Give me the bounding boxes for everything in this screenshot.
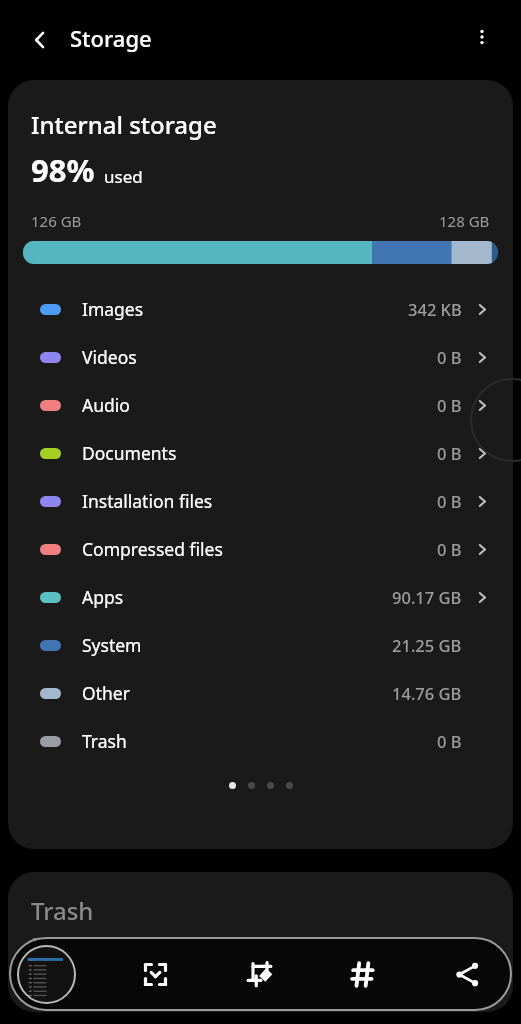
staticText: used bbox=[104, 165, 143, 188]
staticText: System bbox=[82, 633, 142, 657]
staticText: Apps bbox=[82, 585, 124, 609]
button[interactable]: Audio bbox=[8, 381, 513, 429]
staticText: Documents bbox=[82, 441, 177, 465]
button[interactable]: Crop bbox=[233, 948, 285, 1000]
button[interactable]: Videos bbox=[8, 333, 513, 381]
button[interactable]: Installation files bbox=[8, 477, 513, 525]
button[interactable]: Other bbox=[8, 669, 513, 717]
staticText: 0 B bbox=[437, 490, 462, 512]
staticText: 98% bbox=[31, 149, 95, 191]
button[interactable]: Capture more bbox=[129, 948, 181, 1000]
staticText: Internal storage bbox=[31, 108, 217, 141]
button[interactable]: More options bbox=[460, 15, 504, 59]
staticText: 21.25 GB bbox=[392, 634, 462, 656]
staticText: Storage bbox=[70, 23, 152, 53]
button[interactable]: Documents bbox=[8, 429, 513, 477]
staticText: 0 B bbox=[437, 538, 462, 560]
staticText: 0 B bbox=[437, 346, 462, 368]
button[interactable]: Add tag bbox=[337, 948, 389, 1000]
staticText: Other bbox=[82, 681, 130, 705]
staticText: 0 B bbox=[31, 932, 54, 952]
button[interactable]: Compressed files bbox=[8, 525, 513, 573]
staticText: Videos bbox=[82, 345, 137, 369]
staticText: 90.17 GB bbox=[392, 586, 462, 608]
staticText: Images bbox=[82, 297, 144, 321]
staticText: 342 KB bbox=[408, 298, 462, 320]
staticText: 126 GB bbox=[31, 211, 82, 231]
button[interactable]: Back bbox=[18, 18, 62, 62]
button[interactable]: System bbox=[8, 621, 513, 669]
staticText: 0 B bbox=[437, 442, 462, 464]
staticText: 0 B bbox=[437, 394, 462, 416]
staticText: Trash bbox=[31, 894, 94, 927]
button[interactable]: Share bbox=[441, 948, 493, 1000]
button[interactable]: Images bbox=[8, 285, 513, 333]
button[interactable]: Trash bbox=[8, 717, 513, 765]
staticText: 128 GB bbox=[439, 211, 490, 231]
staticText: Installation files bbox=[82, 489, 213, 513]
button[interactable]: Trash bbox=[8, 872, 513, 1012]
staticText: Audio bbox=[82, 393, 130, 417]
staticText: 14.76 GB bbox=[392, 682, 462, 704]
button[interactable]: Screenshot preview bbox=[17, 945, 76, 1004]
staticText: Trash bbox=[82, 729, 127, 753]
staticText: 0 B bbox=[437, 730, 462, 752]
button[interactable]: Apps bbox=[8, 573, 513, 621]
staticText: Compressed files bbox=[82, 537, 223, 561]
